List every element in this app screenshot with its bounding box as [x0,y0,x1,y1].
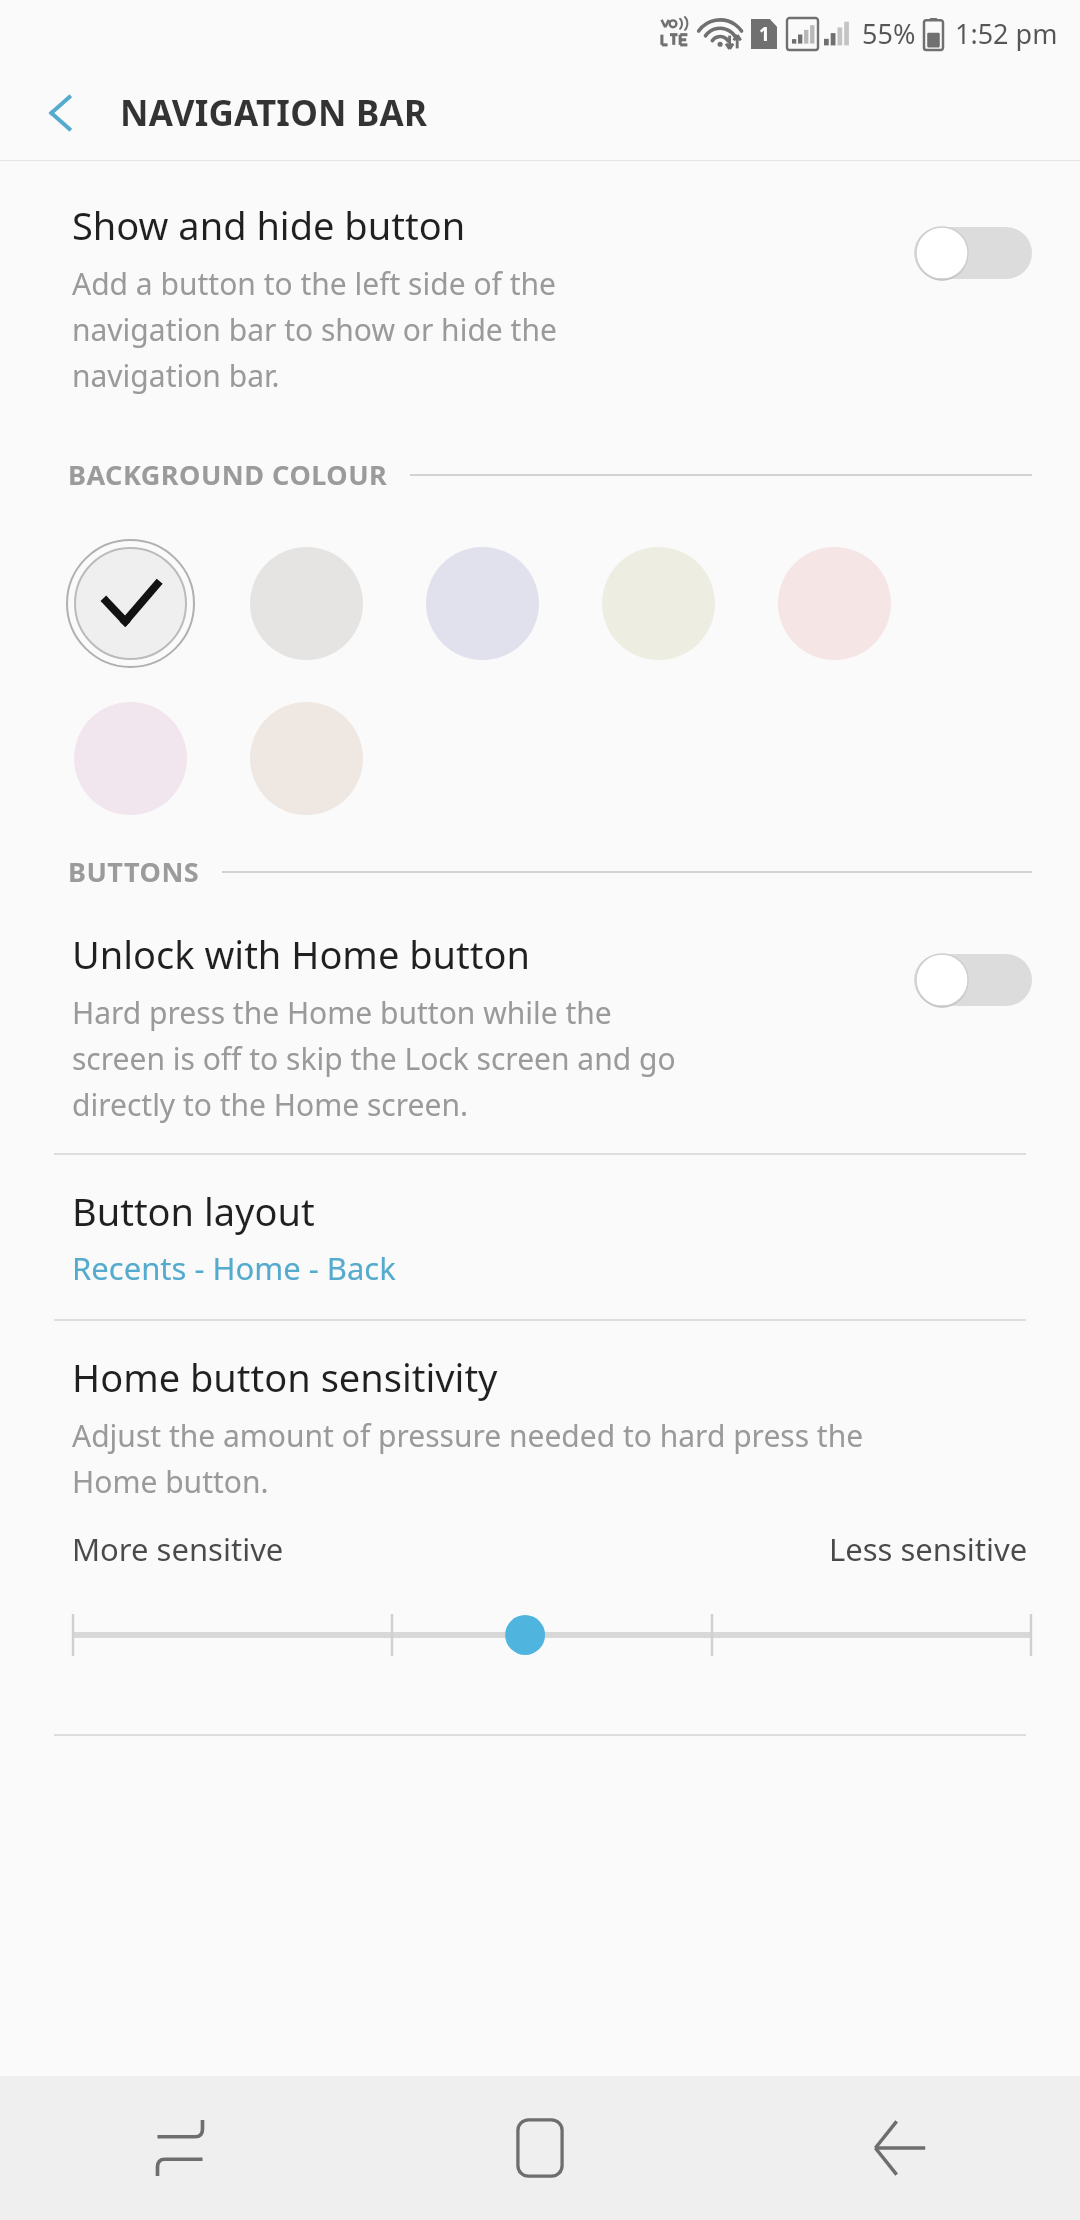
staticText: BUTTONS [68,853,200,890]
button[interactable]: Unlock with Home button [0,894,1080,1153]
button[interactable]: Home button sensitivity slider [72,1600,1032,1670]
staticText: Recents - Home - Back [72,1247,396,1289]
button[interactable]: Button layout [0,1155,1080,1319]
staticText: Adjust the amount of pressure needed to … [72,1415,952,1502]
button[interactable]: Show and hide button [0,161,1080,422]
staticText: More sensitive [72,1528,284,1570]
staticText: 1 [759,21,770,47]
button[interactable]: Colour swatch [66,694,195,823]
button[interactable]: Colour swatch [770,539,899,668]
button[interactable]: Toggle [914,225,1032,281]
button[interactable]: Colour swatch [242,539,371,668]
button[interactable]: Back [30,82,92,144]
button[interactable]: Colour swatch [242,694,371,823]
button[interactable]: Colour swatch [66,539,195,668]
button[interactable]: Toggle [914,952,1032,1008]
button[interactable]: Colour swatch [418,539,547,668]
button[interactable]: Back [845,2093,955,2203]
staticText: 55% [862,15,916,52]
staticText: Show and hide button [72,199,466,251]
staticText: BACKGROUND COLOUR [68,456,388,493]
button[interactable]: Home [485,2093,595,2203]
staticText: Hard press the Home button while the scr… [72,992,692,1125]
staticText: Less sensitive [829,1528,1028,1570]
button[interactable]: Recents [125,2093,235,2203]
button[interactable]: Colour swatch [594,539,723,668]
staticText: Add a button to the left side of the nav… [72,263,672,396]
staticText: Unlock with Home button [72,928,530,980]
staticText: Home button sensitivity [72,1351,498,1403]
staticText: NAVIGATION BAR [120,89,428,137]
staticText: 1:52 pm [955,15,1058,52]
staticText: Button layout [72,1185,315,1237]
